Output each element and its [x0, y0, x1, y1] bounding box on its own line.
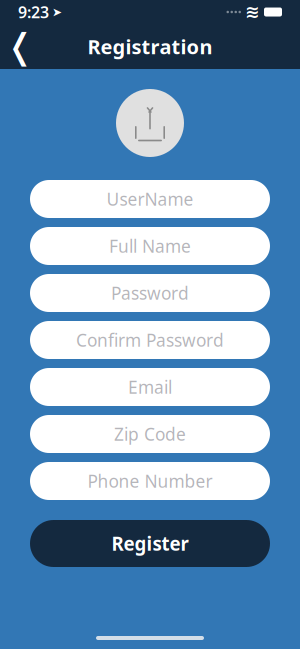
button[interactable]: Email — [30, 368, 270, 406]
staticText: Register — [111, 531, 188, 556]
button[interactable]: Zip Code — [30, 415, 270, 453]
button[interactable]: Register — [30, 520, 270, 567]
button[interactable]: Full Name — [30, 227, 270, 265]
staticText: Confirm Password — [76, 328, 224, 351]
staticText: Email — [128, 375, 172, 398]
staticText: Full Name — [109, 234, 191, 257]
button[interactable]: Password — [30, 274, 270, 312]
staticText: Zip Code — [114, 422, 186, 445]
button[interactable]: Phone Number — [30, 462, 270, 500]
staticText: UserName — [106, 187, 193, 210]
button[interactable]: Upload profile photo — [116, 84, 184, 162]
staticText: ≋ — [245, 2, 260, 22]
staticText: Password — [111, 281, 189, 304]
button[interactable]: Confirm Password — [30, 321, 270, 359]
button[interactable]: Back — [0, 26, 40, 66]
staticText: 9:23 — [18, 1, 49, 23]
staticText: Registration — [87, 33, 212, 60]
button[interactable]: UserName — [30, 180, 270, 218]
staticText: ➤ — [52, 5, 62, 19]
staticText: ❬ — [5, 27, 34, 66]
staticText: Phone Number — [87, 469, 212, 492]
